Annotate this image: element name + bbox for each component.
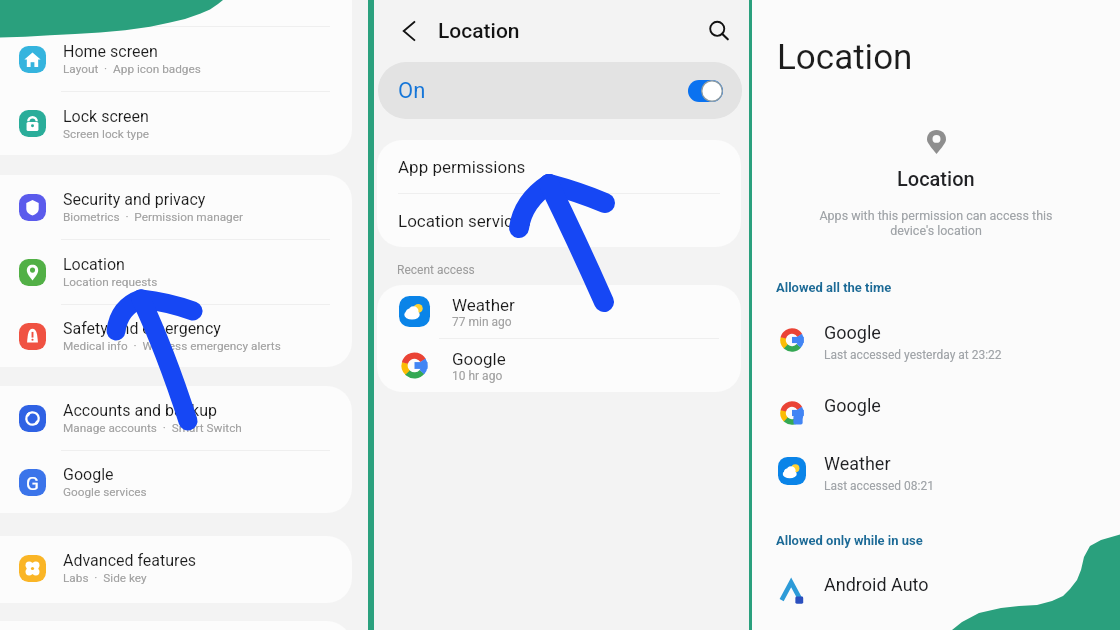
- staticText: Weather: [824, 453, 891, 474]
- button[interactable]: Home screen: [0, 27, 352, 91]
- button[interactable]: Safety and emergency: [0, 305, 352, 367]
- staticText: G: [26, 472, 39, 494]
- staticText: Medical info · Wireless emergency alerts: [63, 339, 281, 353]
- staticText: Recent access: [397, 263, 475, 277]
- staticText: Location: [63, 255, 125, 274]
- staticText: Labs · Side key: [63, 571, 147, 585]
- button[interactable]: Advanced features: [0, 536, 352, 600]
- button[interactable]: On: [378, 62, 742, 119]
- staticText: Allowed all the time: [776, 280, 892, 295]
- staticText: Location: [438, 19, 520, 44]
- staticText: Location: [897, 167, 975, 190]
- staticText: Google: [824, 322, 881, 343]
- staticText: Manage accounts · Smart Switch: [63, 421, 242, 435]
- staticText: Weather: [452, 295, 515, 315]
- staticText: Google: [824, 395, 881, 416]
- staticText: Home screen: [63, 42, 158, 61]
- staticText: Brightness · Navigation bar: [63, 0, 211, 11]
- staticText: Screen lock type: [63, 127, 150, 141]
- staticText: Layout · App icon badges: [63, 62, 201, 76]
- staticText: Advanced features: [63, 551, 197, 570]
- button[interactable]: Weather: [752, 453, 1120, 493]
- button[interactable]: Location services: [377, 194, 741, 247]
- button[interactable]: Accounts and backup: [0, 386, 352, 450]
- staticText: Security and privacy: [63, 190, 206, 209]
- staticText: Location requests: [63, 275, 158, 289]
- button[interactable]: Search: [708, 20, 730, 42]
- button[interactable]: Android Auto: [752, 574, 1120, 602]
- staticText: Location: [777, 37, 913, 78]
- staticText: 77 min ago: [452, 315, 512, 329]
- staticText: App permissions: [398, 157, 526, 177]
- staticText: 10 hr ago: [452, 369, 503, 383]
- button[interactable]: Security and privacy: [0, 175, 352, 239]
- staticText: Last accessed yesterday at 23:22: [824, 348, 1002, 362]
- button[interactable]: Google: [752, 395, 1120, 423]
- staticText: Lock screen: [63, 107, 149, 126]
- button[interactable]: G: [0, 451, 352, 513]
- staticText: Google: [63, 465, 114, 484]
- staticText: Last accessed 08:21: [824, 479, 934, 493]
- staticText: Google: [452, 349, 506, 369]
- button[interactable]: Google: [752, 322, 1120, 362]
- staticText: Safety and emergency: [63, 319, 221, 338]
- button[interactable]: Weather: [377, 285, 741, 338]
- staticText: On: [398, 78, 426, 104]
- staticText: Biometrics · Permission manager: [63, 210, 243, 224]
- staticText: Accounts and backup: [63, 401, 217, 420]
- staticText: Apps with this permission can access thi…: [819, 208, 1053, 238]
- staticText: Google services: [63, 485, 147, 499]
- button[interactable]: App permissions: [377, 140, 741, 193]
- button[interactable]: Lock screen: [0, 92, 352, 155]
- button[interactable]: Location: [0, 240, 352, 304]
- button[interactable]: Google: [377, 339, 741, 392]
- button[interactable]: Display: [0, 0, 352, 26]
- staticText: Allowed only while in use: [776, 533, 923, 548]
- staticText: Android Auto: [824, 574, 929, 595]
- staticText: Location services: [398, 211, 531, 231]
- button[interactable]: Back: [398, 20, 420, 42]
